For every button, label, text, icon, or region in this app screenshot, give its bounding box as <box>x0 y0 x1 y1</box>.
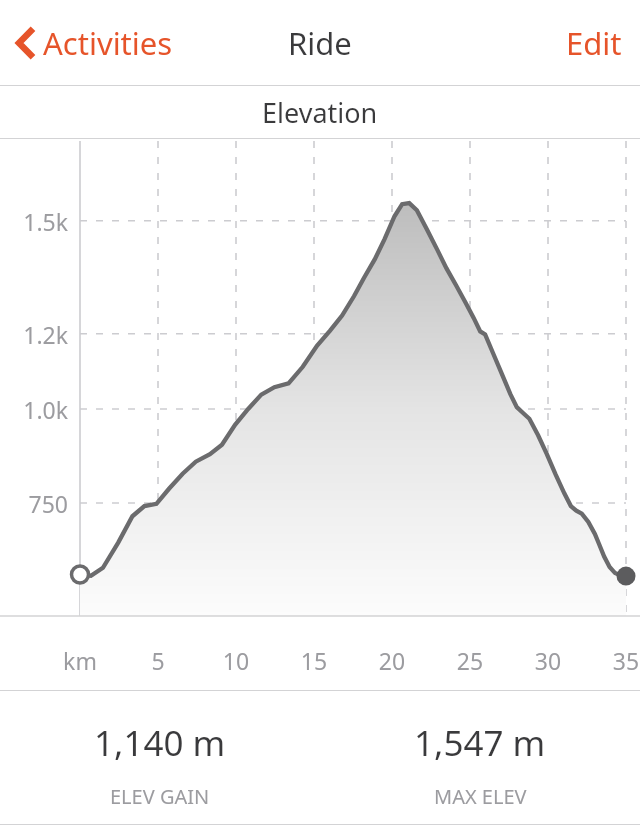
button[interactable]: Edit <box>548 10 640 76</box>
staticText: 1,140 m <box>94 719 226 767</box>
button[interactable]: 1,547 m <box>320 691 640 810</box>
button[interactable]: Activities <box>0 16 189 70</box>
staticText: 10 <box>196 645 276 676</box>
staticText: 25 <box>430 645 510 676</box>
staticText: 15 <box>274 645 354 676</box>
button[interactable]: 1,140 m <box>0 691 320 810</box>
staticText: 20 <box>352 645 432 676</box>
staticText: 1,547 m <box>414 719 546 767</box>
staticText: Activities <box>43 22 173 64</box>
staticText: 5 <box>118 645 198 676</box>
staticText: 1.0k <box>10 394 68 425</box>
staticText: 750 <box>10 488 68 519</box>
staticText: Elevation <box>262 94 378 131</box>
staticText: km <box>40 645 120 676</box>
staticText: Edit <box>566 22 622 64</box>
staticText: 1.2k <box>10 319 68 350</box>
staticText: 35 <box>586 645 640 676</box>
staticText: 30 <box>508 645 588 676</box>
staticText: Ride <box>288 22 352 64</box>
staticText: MAX ELEV <box>434 783 527 810</box>
staticText: 1.5k <box>10 206 68 237</box>
staticText: ELEV GAIN <box>110 783 210 810</box>
